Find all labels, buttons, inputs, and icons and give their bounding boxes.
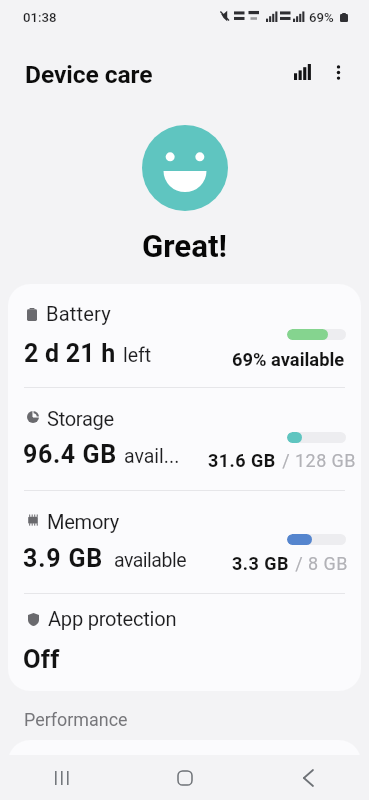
- staticText: Great!: [0, 228, 369, 265]
- button[interactable]: Back: [246, 755, 369, 800]
- staticText: /: [276, 450, 295, 471]
- staticText: 69% available: [232, 349, 345, 370]
- staticText: 3.9 GB: [23, 544, 103, 573]
- staticText: 8 GB: [308, 553, 348, 574]
- button[interactable]: Memory: [8, 490, 361, 592]
- button[interactable]: Usage statistics: [284, 54, 320, 90]
- staticText: avail...: [124, 445, 180, 468]
- staticText: 01:38: [23, 10, 57, 25]
- staticText: Device care: [25, 60, 153, 89]
- button[interactable]: Home: [123, 755, 246, 800]
- button[interactable]: More options: [320, 54, 356, 90]
- staticText: 3.3 GB: [232, 553, 289, 574]
- button[interactable]: Storage: [8, 387, 361, 489]
- staticText: left: [123, 344, 152, 367]
- staticText: 31.6 GB: [208, 450, 276, 471]
- staticText: Memory: [47, 510, 119, 534]
- staticText: 96.4 GB: [23, 440, 117, 469]
- staticText: App protection: [48, 607, 177, 631]
- staticText: Performance: [24, 709, 128, 730]
- button[interactable]: Recent apps: [0, 755, 123, 800]
- staticText: 2 d 21 h: [24, 339, 116, 368]
- staticText: Off: [23, 644, 60, 674]
- button[interactable]: Battery: [8, 284, 361, 387]
- staticText: 69%: [309, 10, 334, 25]
- staticText: Storage: [47, 407, 114, 431]
- staticText: available: [114, 549, 186, 572]
- staticText: /: [289, 553, 308, 574]
- staticText: 128 GB: [295, 450, 356, 471]
- staticText: Battery: [46, 302, 111, 326]
- button[interactable]: App protection: [8, 593, 361, 691]
